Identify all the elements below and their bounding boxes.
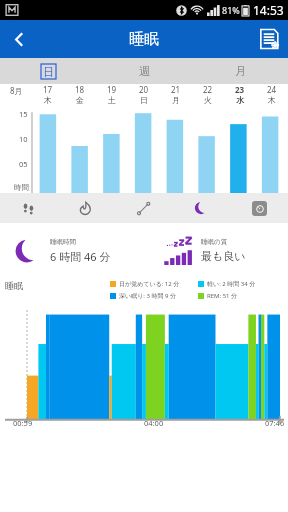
staticText: 05 (19, 159, 28, 169)
button[interactable]: 週 (96, 58, 192, 84)
button[interactable]: 21 (160, 84, 192, 108)
staticText: 22 (203, 84, 213, 95)
staticText: 時間 (14, 183, 29, 192)
staticText: 最も良い (201, 249, 246, 263)
staticText: 21 (171, 84, 181, 95)
button[interactable]: Calories (57, 193, 114, 223)
staticText: 81% (222, 4, 240, 16)
staticText: 19 (107, 84, 117, 95)
button[interactable]: 23 (224, 84, 256, 108)
button[interactable]: 19 (96, 84, 128, 108)
staticText: 20 (139, 84, 149, 95)
staticText: 週 (139, 64, 150, 78)
staticText: 水 (236, 95, 244, 105)
button[interactable]: Weight (230, 193, 288, 223)
button[interactable]: 17 (32, 84, 64, 108)
button[interactable]: 18 (64, 84, 96, 108)
button[interactable]: Sleep settings (250, 20, 288, 58)
button[interactable]: 22 (192, 84, 224, 108)
staticText: 軽い: 2 時間 34 分 (207, 280, 256, 288)
button[interactable]: 日 (0, 58, 96, 84)
button[interactable]: 月 (192, 58, 288, 84)
staticText: 深い眠り: 3 時間 9 分 (119, 292, 176, 300)
staticText: 15 (19, 109, 28, 119)
staticText: 04:00 (144, 418, 164, 428)
staticText: 木 (268, 95, 276, 105)
staticText: 07:46 (265, 418, 285, 428)
staticText: 8月 (10, 85, 23, 96)
staticText: 土 (108, 95, 116, 105)
staticText: 00:59 (13, 418, 33, 428)
staticText: 18 (75, 84, 85, 95)
staticText: 月 (172, 95, 180, 105)
button[interactable]: 20 (128, 84, 160, 108)
staticText: 睡眠 (5, 280, 23, 291)
staticText: 月 (235, 64, 246, 78)
staticText: 睡眠の質 (201, 238, 228, 246)
staticText: 6 時間 46 分 (50, 249, 111, 264)
staticText: 火 (204, 95, 212, 105)
button[interactable]: Distance (114, 193, 172, 223)
staticText: 金 (76, 95, 84, 105)
staticText: 17 (43, 84, 53, 95)
button[interactable]: Sleep (172, 193, 230, 223)
button[interactable]: 24 (256, 84, 288, 108)
button[interactable]: Back (0, 20, 38, 58)
staticText: REM: 51 分 (207, 292, 238, 300)
staticText: 日 (140, 95, 148, 105)
button[interactable]: Steps (0, 193, 57, 223)
staticText: 睡眠 (129, 30, 159, 49)
staticText: 23 (235, 84, 245, 95)
staticText: 10 (19, 134, 28, 144)
staticText: 睡眠時間 (50, 238, 76, 246)
staticText: 14:53 (253, 2, 284, 18)
staticText: 24 (267, 84, 277, 95)
staticText: 日 (43, 65, 54, 79)
staticText: 日が覚めている: 12 分 (119, 280, 180, 288)
staticText: 木 (44, 95, 52, 105)
